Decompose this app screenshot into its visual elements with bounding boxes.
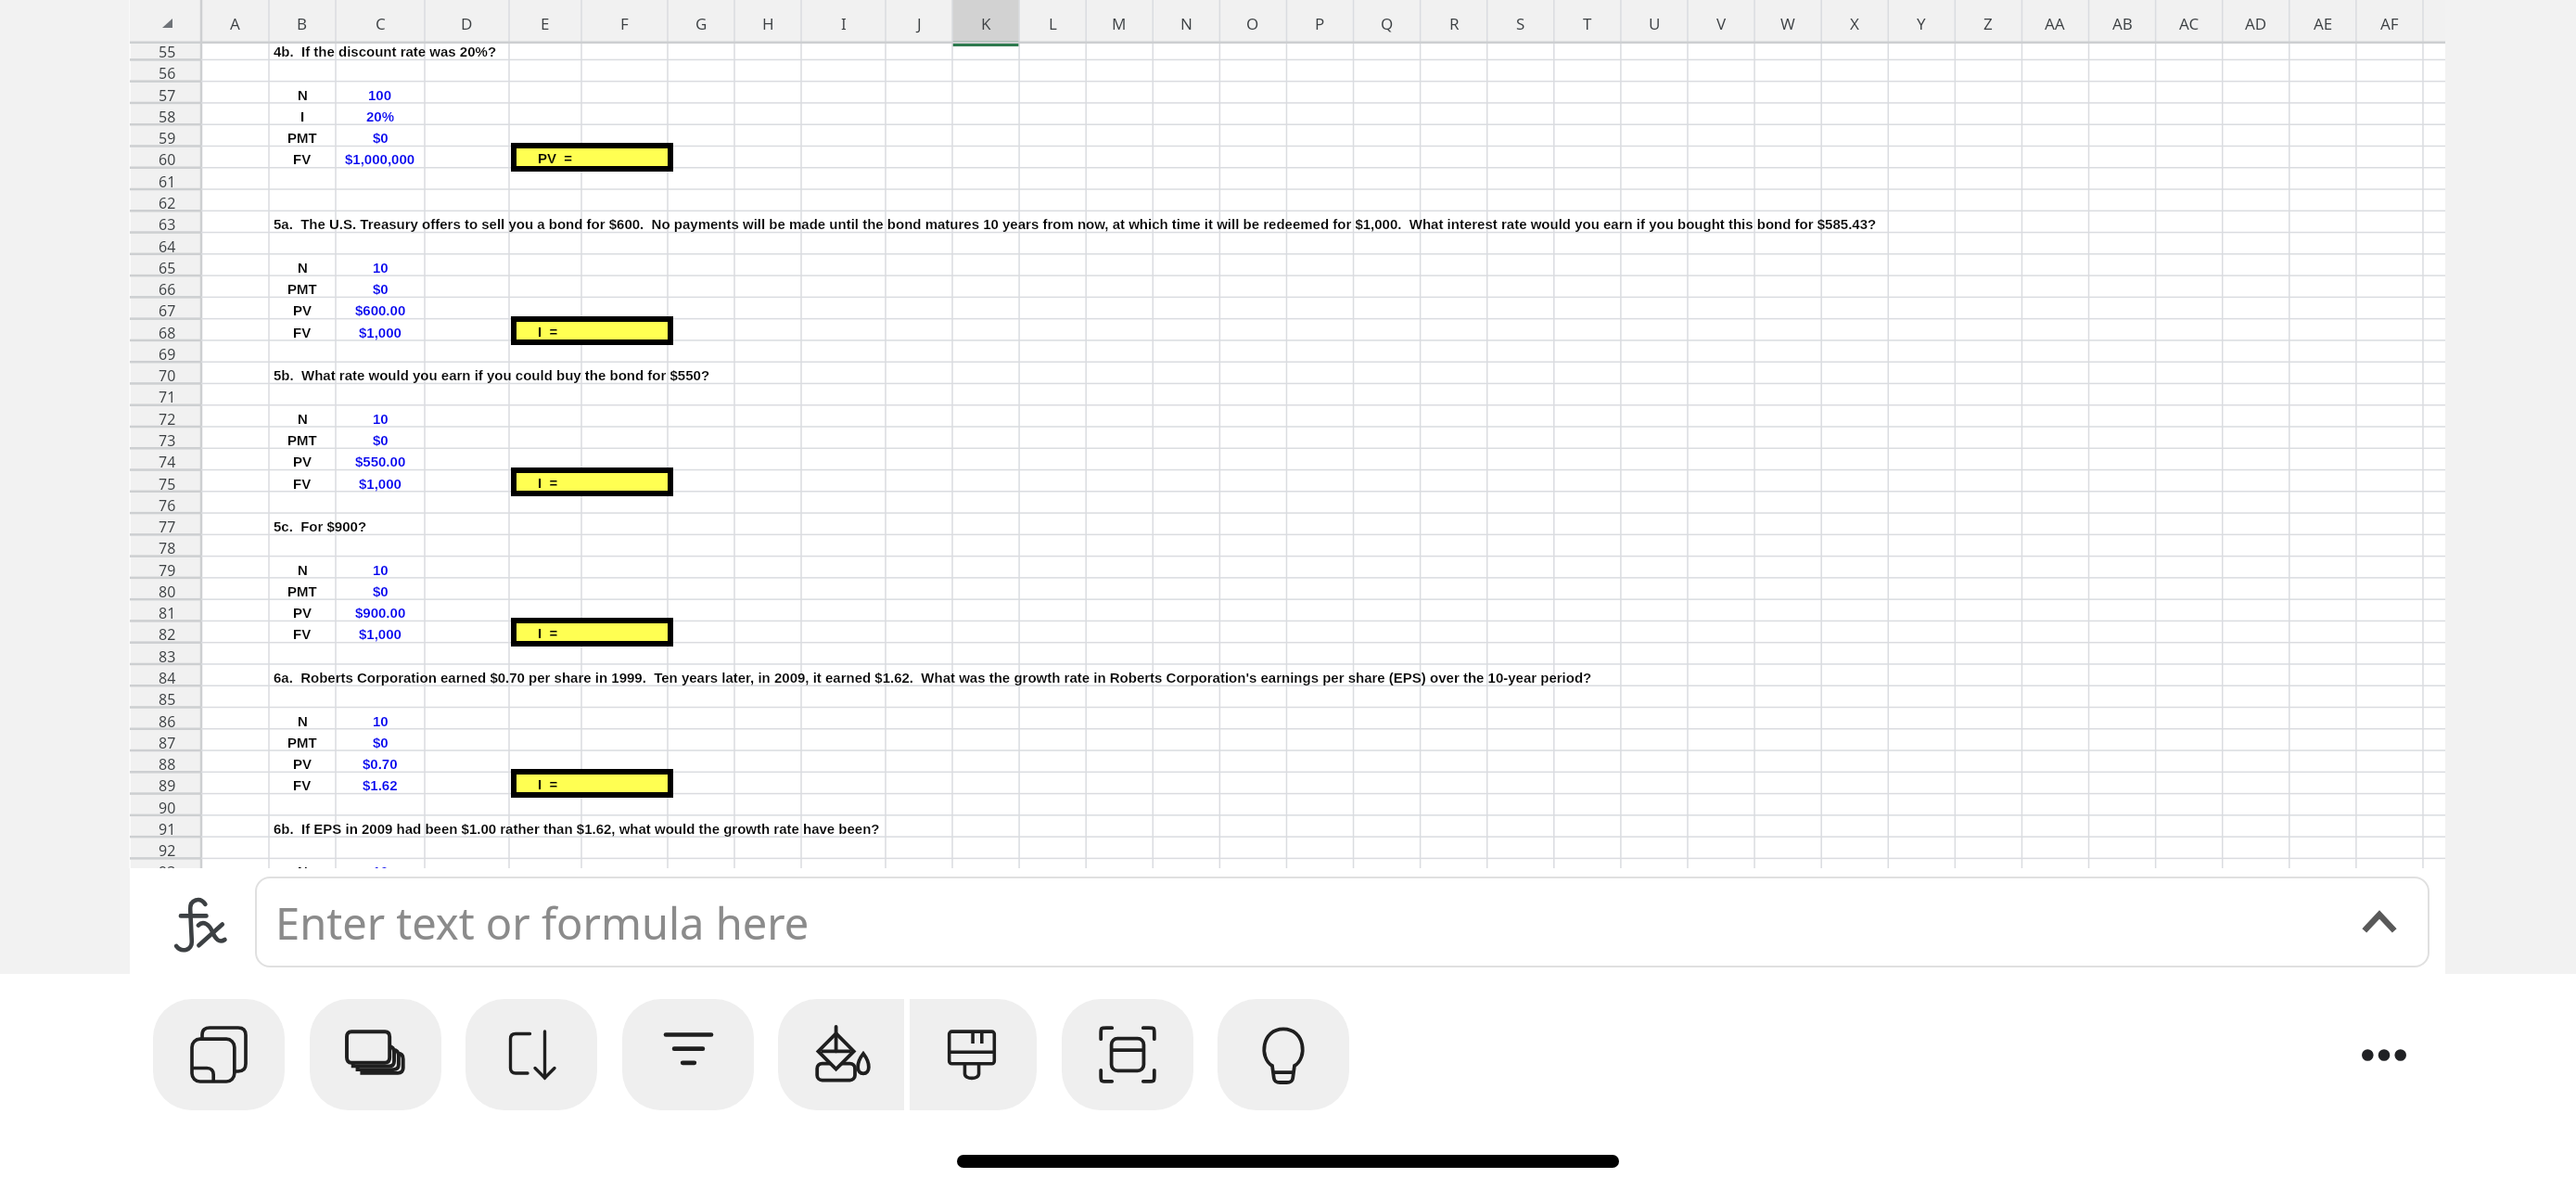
button[interactable]: PV [269, 448, 336, 469]
button[interactable]: D [425, 0, 509, 42]
button[interactable]: 56 [130, 59, 201, 81]
button[interactable]: 79 [130, 557, 201, 578]
button[interactable]: 63 [130, 211, 201, 232]
button[interactable]: 10 [336, 254, 425, 275]
button[interactable]: Y [1888, 0, 1955, 42]
button[interactable]: 74 [130, 448, 201, 469]
button[interactable]: FV [269, 319, 336, 340]
button[interactable]: $0 [336, 275, 425, 297]
button[interactable]: PMT [269, 124, 336, 146]
button[interactable]: FV [269, 621, 336, 642]
button[interactable]: 90 [130, 794, 201, 815]
button[interactable]: A [201, 0, 269, 42]
button[interactable]: PMT [269, 578, 336, 599]
button[interactable]: 6b. If EPS in 2009 had been $1.00 rather… [269, 815, 2445, 837]
button[interactable]: 76 [130, 492, 201, 513]
button[interactable]: 80 [130, 578, 201, 599]
button[interactable]: 73 [130, 427, 201, 448]
button[interactable]: N [269, 708, 336, 729]
button[interactable]: N [269, 82, 336, 103]
button[interactable]: L [1019, 0, 1086, 42]
button[interactable]: 69 [130, 340, 201, 362]
button[interactable]: 5a. The U.S. Treasury offers to sell you… [269, 211, 2445, 232]
button[interactable]: X [1821, 0, 1888, 42]
button[interactable]: N [269, 254, 336, 275]
button[interactable]: J [886, 0, 952, 42]
button[interactable]: 92 [130, 837, 201, 858]
button[interactable]: 10 [336, 858, 425, 868]
button[interactable]: Fill colour [778, 999, 904, 1110]
button[interactable]: T [1554, 0, 1621, 42]
button[interactable]: R [1421, 0, 1487, 42]
button[interactable]: 59 [130, 124, 201, 146]
button[interactable]: PMT [269, 275, 336, 297]
button[interactable]: FV [269, 772, 336, 793]
button[interactable]: $0 [336, 578, 425, 599]
button[interactable]: 75 [130, 470, 201, 492]
button[interactable]: 84 [130, 664, 201, 685]
button[interactable]: $0.70 [336, 750, 425, 772]
button[interactable]: 100 [336, 82, 425, 103]
button[interactable]: More options [2338, 1008, 2430, 1101]
button[interactable]: AC [2156, 0, 2223, 42]
button[interactable]: FV [269, 146, 336, 167]
button[interactable]: Merge cells [1062, 999, 1193, 1110]
button[interactable]: 10 [336, 405, 425, 427]
button[interactable]: S [1487, 0, 1554, 42]
button[interactable]: PMT [269, 729, 336, 750]
button[interactable]: I = [516, 322, 668, 339]
button[interactable]: 91 [130, 815, 201, 837]
button[interactable]: 68 [130, 319, 201, 340]
button[interactable]: Sort [465, 999, 597, 1110]
button[interactable]: PV [269, 750, 336, 772]
button[interactable]: Filter [622, 999, 754, 1110]
button[interactable]: 86 [130, 708, 201, 729]
button[interactable]: I = [516, 473, 668, 491]
button[interactable]: AF [2356, 0, 2423, 42]
button[interactable]: N [269, 557, 336, 578]
button[interactable]: 89 [130, 772, 201, 793]
button[interactable]: I = [516, 623, 668, 641]
button[interactable]: F [581, 0, 668, 42]
button[interactable]: 83 [130, 643, 201, 664]
button[interactable]: M [1086, 0, 1153, 42]
button[interactable]: Insert function [163, 887, 237, 961]
button[interactable]: 57 [130, 82, 201, 103]
button[interactable]: 82 [130, 621, 201, 642]
button[interactable]: AB [2089, 0, 2156, 42]
button[interactable]: 10 [336, 557, 425, 578]
button[interactable]: 4b. If the discount rate was 20%? [269, 38, 2445, 59]
button[interactable]: 87 [130, 729, 201, 750]
button[interactable]: 71 [130, 383, 201, 404]
button[interactable]: N [1153, 0, 1219, 42]
button[interactable]: PMT [269, 427, 336, 448]
button[interactable]: PV [269, 599, 336, 621]
button[interactable]: V [1688, 0, 1754, 42]
button[interactable]: N [269, 858, 336, 868]
button[interactable]: H [734, 0, 801, 42]
button[interactable]: 78 [130, 534, 201, 556]
button[interactable]: AE [2289, 0, 2356, 42]
button[interactable]: Layers [310, 999, 441, 1110]
button[interactable]: $1,000 [336, 319, 425, 340]
button[interactable]: 62 [130, 189, 201, 211]
button[interactable]: 66 [130, 275, 201, 297]
button[interactable]: 70 [130, 362, 201, 383]
button[interactable]: Select all [130, 0, 201, 42]
button[interactable]: 61 [130, 168, 201, 189]
button[interactable]: PV = [516, 148, 668, 166]
button[interactable]: I = [516, 775, 668, 792]
button[interactable]: 72 [130, 405, 201, 427]
button[interactable]: I [801, 0, 886, 42]
button[interactable]: P [1286, 0, 1353, 42]
button[interactable]: $1,000 [336, 470, 425, 492]
button[interactable]: 55 [130, 38, 201, 59]
button[interactable]: 5b. What rate would you earn if you coul… [269, 362, 2445, 383]
button[interactable]: FV [269, 470, 336, 492]
button[interactable]: 67 [130, 297, 201, 318]
button[interactable]: AA [2021, 0, 2088, 42]
button[interactable]: $1,000 [336, 621, 425, 642]
button[interactable]: PV [269, 297, 336, 318]
button[interactable]: 77 [130, 513, 201, 534]
button[interactable]: K [952, 0, 1019, 42]
